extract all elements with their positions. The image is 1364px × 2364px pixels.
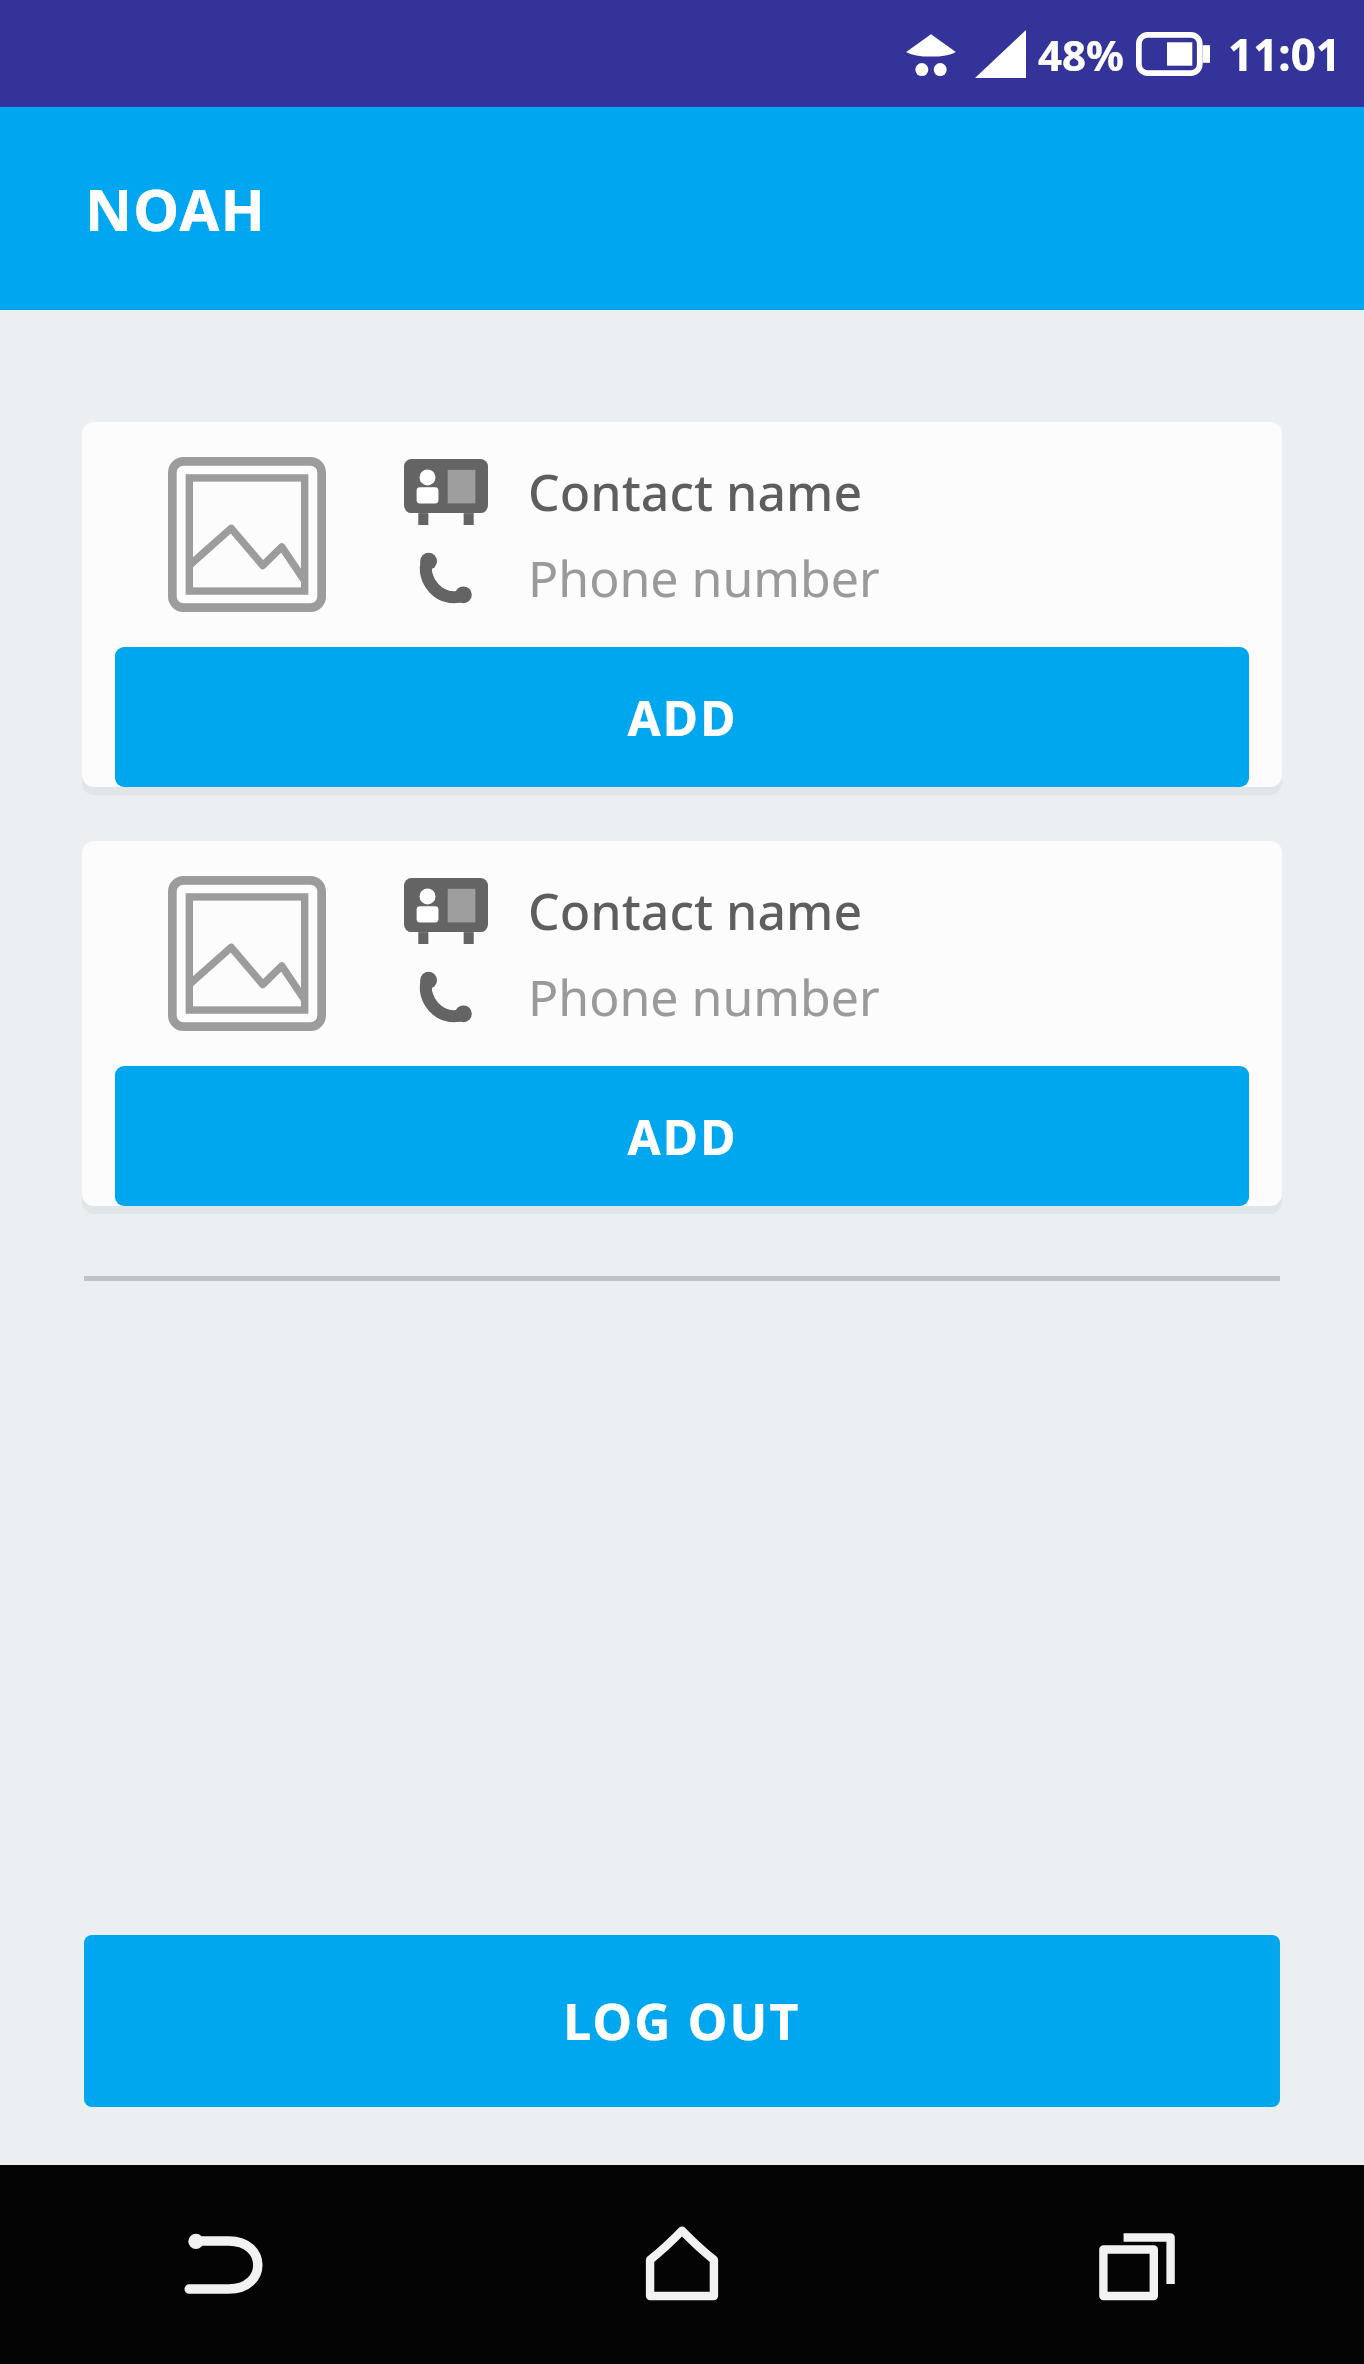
staticText: 48% bbox=[1038, 26, 1124, 83]
button[interactable]: LOG OUT bbox=[84, 1935, 1280, 2107]
staticText: 11:01 bbox=[1228, 24, 1342, 84]
button[interactable]: Contact name bbox=[82, 841, 1282, 1206]
staticText: Phone number bbox=[528, 544, 880, 612]
button[interactable]: Contact name bbox=[82, 422, 1282, 787]
button[interactable]: Back bbox=[0, 2165, 454, 2364]
button[interactable]: ADD bbox=[115, 647, 1249, 787]
staticText: ADD bbox=[627, 1104, 738, 1169]
staticText: Contact name bbox=[528, 458, 863, 526]
staticText: Contact name bbox=[528, 877, 863, 945]
staticText: LOG OUT bbox=[563, 1987, 801, 2055]
button[interactable]: Recent apps bbox=[909, 2165, 1364, 2364]
staticText: Phone number bbox=[528, 963, 880, 1031]
staticText: ADD bbox=[627, 685, 738, 750]
staticText: NOAH bbox=[85, 169, 267, 248]
button[interactable]: ADD bbox=[115, 1066, 1249, 1206]
button[interactable]: Home bbox=[454, 2165, 909, 2364]
